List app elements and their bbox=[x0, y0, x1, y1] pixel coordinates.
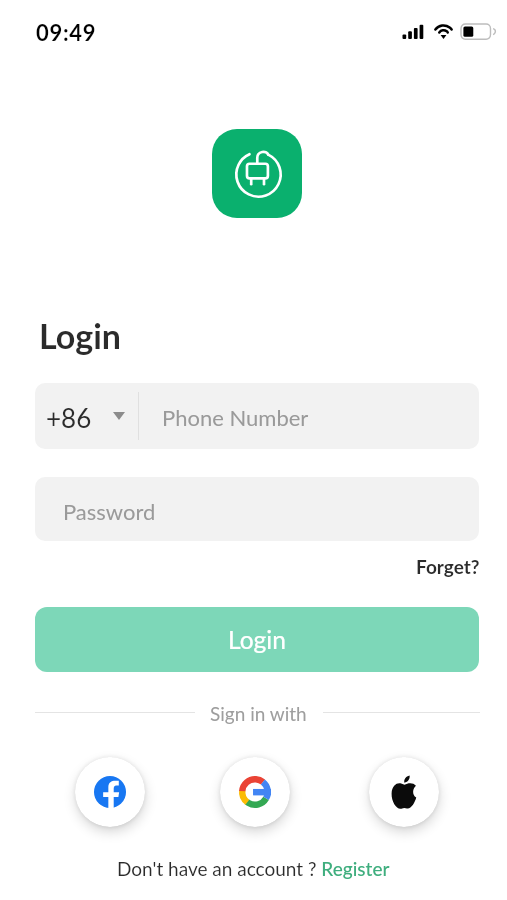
button[interactable]: Forget? bbox=[412, 553, 484, 580]
button[interactable]: Phone Number bbox=[139, 383, 479, 449]
button[interactable]: Login bbox=[35, 607, 479, 672]
staticText: Login bbox=[228, 625, 286, 654]
staticText: 09:49 bbox=[36, 19, 97, 45]
button[interactable]: Sign in with Google bbox=[220, 757, 290, 827]
staticText: Phone Number bbox=[162, 404, 309, 430]
button[interactable]: Sign in with Facebook bbox=[75, 757, 145, 827]
staticText: Sign in with bbox=[210, 702, 307, 725]
staticText: Login bbox=[39, 315, 121, 356]
staticText: Password bbox=[63, 498, 156, 524]
button[interactable]: Sign in with Apple bbox=[369, 757, 439, 827]
button[interactable]: Don't have an account ? Register bbox=[117, 857, 390, 880]
staticText: +86 bbox=[46, 402, 92, 433]
button[interactable]: +86 bbox=[35, 383, 138, 449]
staticText: Forget? bbox=[416, 555, 480, 578]
button[interactable]: Password bbox=[35, 477, 479, 541]
